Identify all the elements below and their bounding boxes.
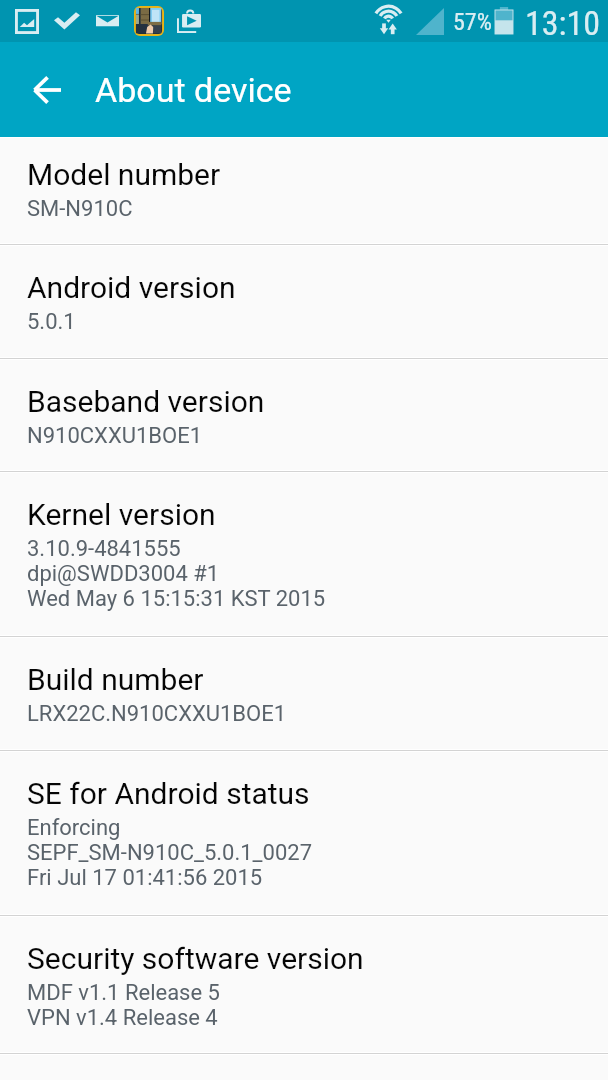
button[interactable]: Android version bbox=[0, 245, 608, 359]
button[interactable]: Model number bbox=[0, 137, 608, 245]
staticText: Kernel version bbox=[27, 497, 216, 532]
staticText: MDF v1.1 Release 5 VPN v1.4 Release 4 bbox=[27, 980, 220, 1030]
staticText: SE for Android status bbox=[27, 776, 310, 811]
staticText: Enforcing SEPF_SM-N910C_5.0.1_0027 Fri J… bbox=[27, 815, 312, 890]
staticText: About device bbox=[95, 70, 292, 110]
staticText: N910CXXU1BOE1 bbox=[27, 423, 203, 448]
button[interactable]: Baseband version bbox=[0, 359, 608, 472]
staticText: 57% bbox=[453, 8, 492, 36]
button[interactable]: Build number bbox=[0, 637, 608, 751]
button[interactable]: Security software version bbox=[0, 916, 608, 1054]
staticText: Baseband version bbox=[27, 384, 265, 419]
staticText: SM-N910C bbox=[27, 196, 133, 221]
staticText: 5.0.1 bbox=[27, 309, 76, 334]
button[interactable]: SE for Android status bbox=[0, 751, 608, 916]
staticText: LRX22C.N910CXXU1BOE1 bbox=[27, 701, 287, 726]
staticText: Model number bbox=[27, 157, 221, 192]
button[interactable]: Navigate up bbox=[0, 42, 81, 137]
staticText: 13:10 bbox=[525, 3, 601, 43]
staticText: Security software version bbox=[27, 941, 364, 976]
staticText: Build number bbox=[27, 662, 204, 697]
staticText: Android version bbox=[27, 270, 236, 305]
staticText: 3.10.9-4841555 dpi@SWDD3004 #1 Wed May 6… bbox=[27, 536, 326, 611]
button[interactable]: Kernel version bbox=[0, 472, 608, 637]
